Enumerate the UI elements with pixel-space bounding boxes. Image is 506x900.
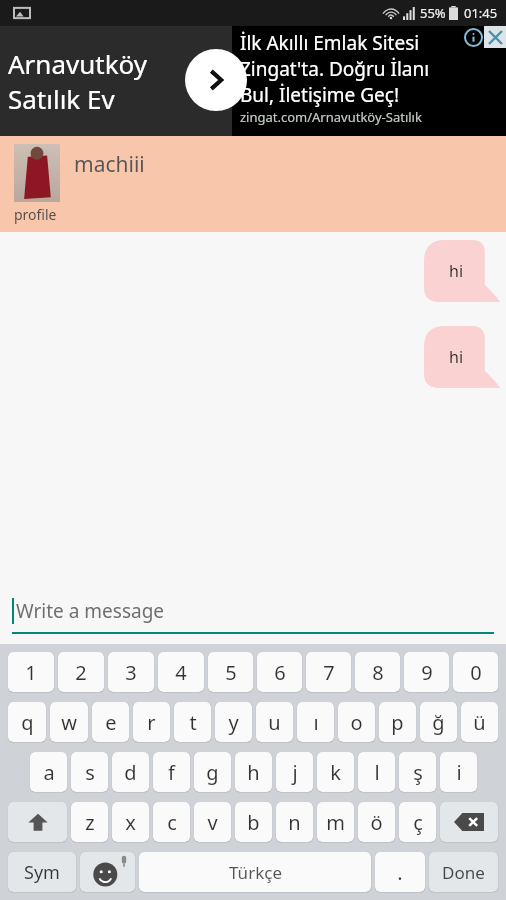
button[interactable]: 7: [306, 652, 351, 692]
button[interactable]: Backspace: [440, 802, 498, 842]
button[interactable]: Arnavutköy: [0, 26, 232, 136]
button[interactable]: z: [71, 802, 108, 842]
staticText: ü: [473, 709, 486, 736]
button[interactable]: Emoji: [80, 852, 135, 892]
staticText: g: [206, 759, 219, 786]
button[interactable]: m: [317, 802, 354, 842]
staticText: Write a message: [16, 598, 165, 624]
button[interactable]: f: [153, 752, 190, 792]
button[interactable]: .: [375, 852, 425, 892]
button[interactable]: u: [256, 702, 293, 742]
button[interactable]: o: [338, 702, 375, 742]
staticText: e: [105, 709, 117, 736]
button[interactable]: ö: [358, 802, 395, 842]
staticText: b: [247, 809, 260, 836]
staticText: i: [456, 759, 462, 786]
button[interactable]: 1: [8, 652, 54, 692]
button[interactable]: j: [276, 752, 313, 792]
button[interactable]: x: [112, 802, 149, 842]
staticText: n: [288, 809, 301, 836]
staticText: Done: [442, 861, 485, 884]
button[interactable]: 3: [108, 652, 154, 692]
button[interactable]: ı: [297, 702, 334, 742]
button[interactable]: p: [379, 702, 416, 742]
staticText: x: [125, 809, 136, 836]
staticText: c: [167, 809, 177, 836]
staticText: 2: [75, 659, 87, 686]
staticText: Arnavutköy: [8, 46, 148, 81]
button[interactable]: s: [71, 752, 108, 792]
button[interactable]: v: [194, 802, 231, 842]
button[interactable]: i: [440, 752, 477, 792]
staticText: f: [168, 759, 175, 786]
button[interactable]: w: [50, 702, 88, 742]
staticText: 0: [470, 659, 482, 686]
button[interactable]: Done: [429, 852, 498, 892]
button[interactable]: 2: [58, 652, 104, 692]
staticText: profile: [14, 205, 57, 224]
staticText: k: [330, 759, 341, 786]
staticText: p: [391, 709, 404, 736]
button[interactable]: 8: [355, 652, 400, 692]
button[interactable]: Ad info: [462, 26, 484, 48]
button[interactable]: Close ad: [484, 26, 506, 48]
staticText: hi: [449, 260, 464, 282]
button[interactable]: Türkçe: [139, 852, 371, 892]
button[interactable]: b: [235, 802, 272, 842]
button[interactable]: e: [92, 702, 129, 742]
staticText: ı: [313, 709, 319, 736]
staticText: r: [147, 709, 156, 736]
staticText: 8: [372, 659, 384, 686]
staticText: a: [43, 759, 55, 786]
button[interactable]: r: [133, 702, 170, 742]
button[interactable]: 0: [453, 652, 498, 692]
staticText: 3: [125, 659, 137, 686]
staticText: 1: [25, 659, 37, 686]
staticText: Türkçe: [229, 861, 282, 884]
button[interactable]: ğ: [420, 702, 457, 742]
staticText: h: [247, 759, 260, 786]
staticText: j: [292, 759, 298, 786]
staticText: ç: [413, 809, 423, 836]
staticText: y: [228, 709, 239, 736]
staticText: Sym: [24, 860, 60, 885]
staticText: l: [374, 759, 380, 786]
staticText: w: [61, 709, 77, 736]
staticText: 6: [274, 659, 286, 686]
button[interactable]: l: [358, 752, 395, 792]
staticText: t: [189, 709, 197, 736]
button[interactable]: q: [8, 702, 46, 742]
button[interactable]: 4: [158, 652, 204, 692]
button[interactable]: c: [153, 802, 190, 842]
button[interactable]: profile: [0, 136, 506, 232]
staticText: q: [21, 709, 34, 736]
button[interactable]: ü: [461, 702, 498, 742]
button[interactable]: Sym: [8, 852, 76, 892]
staticText: m: [326, 809, 345, 836]
button[interactable]: hi: [424, 240, 500, 302]
button[interactable]: g: [194, 752, 231, 792]
button[interactable]: Shift: [8, 802, 67, 842]
staticText: .: [397, 859, 403, 886]
button[interactable]: 9: [404, 652, 449, 692]
button[interactable]: 6: [257, 652, 302, 692]
button[interactable]: ç: [399, 802, 436, 842]
button[interactable]: y: [215, 702, 252, 742]
button[interactable]: hi: [424, 326, 500, 388]
button[interactable]: Open ad: [185, 49, 247, 111]
button[interactable]: h: [235, 752, 272, 792]
staticText: 9: [421, 659, 433, 686]
staticText: o: [350, 709, 363, 736]
staticText: d: [124, 759, 137, 786]
button[interactable]: 5: [208, 652, 253, 692]
button[interactable]: d: [112, 752, 149, 792]
button[interactable]: a: [30, 752, 67, 792]
button[interactable]: k: [317, 752, 354, 792]
staticText: s: [85, 759, 95, 786]
staticText: Bul, İletişime Geç!: [240, 82, 400, 108]
button[interactable]: t: [174, 702, 211, 742]
button[interactable]: ş: [399, 752, 436, 792]
staticText: zingat.com/Arnavutköy-Satılık: [240, 108, 422, 126]
button[interactable]: Write a message: [12, 582, 494, 644]
button[interactable]: n: [276, 802, 313, 842]
